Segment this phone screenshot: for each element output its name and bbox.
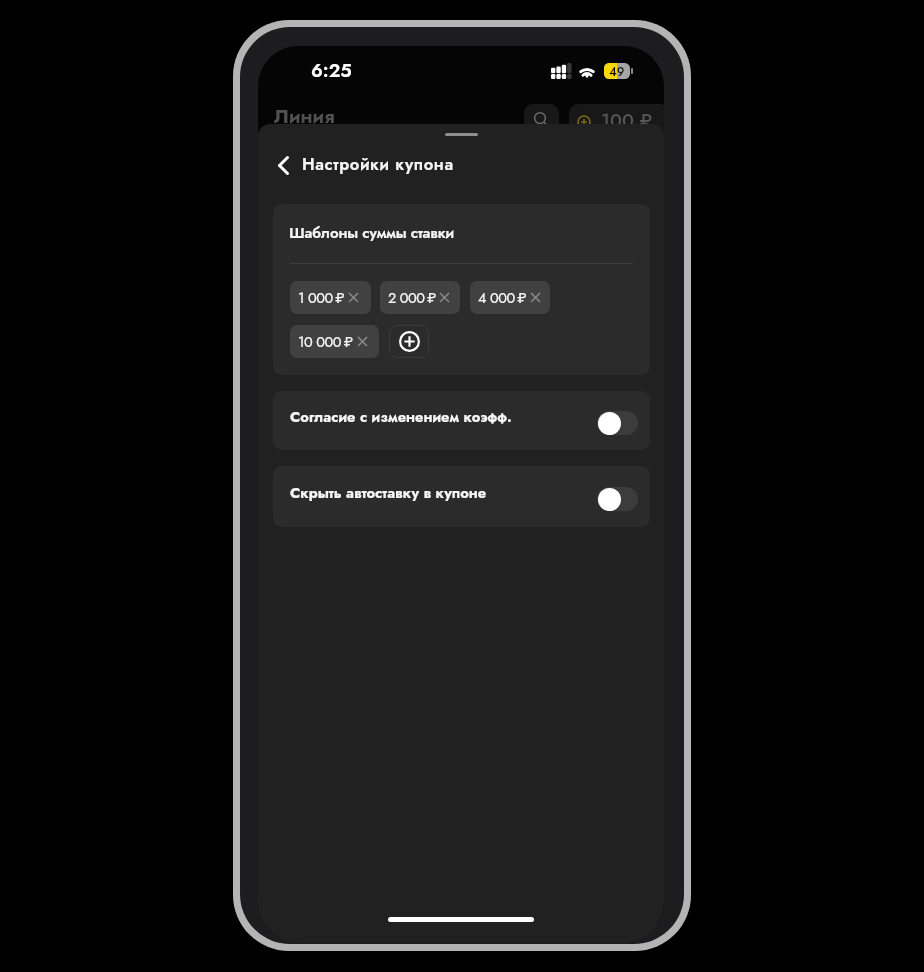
button[interactable]: 4 000 ₽ xyxy=(470,281,550,314)
button[interactable] xyxy=(273,466,650,527)
button[interactable]: 10 000 ₽ xyxy=(290,325,379,358)
button[interactable]: Add amount template xyxy=(389,325,429,358)
button[interactable] xyxy=(273,391,650,450)
button[interactable]: 2 000 ₽ xyxy=(380,281,460,314)
staticText: Настройки купона xyxy=(302,152,454,176)
staticText: 49 xyxy=(609,63,625,79)
staticText: Скрыть автоставку в купоне xyxy=(290,482,487,503)
staticText: 6:25 xyxy=(311,57,352,84)
staticText: Линия xyxy=(274,102,335,130)
staticText: 4 000 ₽ xyxy=(478,287,527,308)
button[interactable]: 1 000 ₽ xyxy=(290,281,371,314)
staticText: 10 000 ₽ xyxy=(298,331,353,352)
button[interactable]: 100 ₽ xyxy=(569,104,664,137)
button[interactable]: Back xyxy=(269,149,297,181)
staticText: 2 000 ₽ xyxy=(388,287,436,308)
staticText: 1 000 ₽ xyxy=(298,287,345,308)
staticText: 100 ₽ xyxy=(601,107,653,134)
staticText: Согласие с изменением коэфф. xyxy=(290,406,512,427)
staticText: Шаблоны суммы ставки xyxy=(289,222,455,244)
button[interactable]: Search xyxy=(524,104,559,137)
